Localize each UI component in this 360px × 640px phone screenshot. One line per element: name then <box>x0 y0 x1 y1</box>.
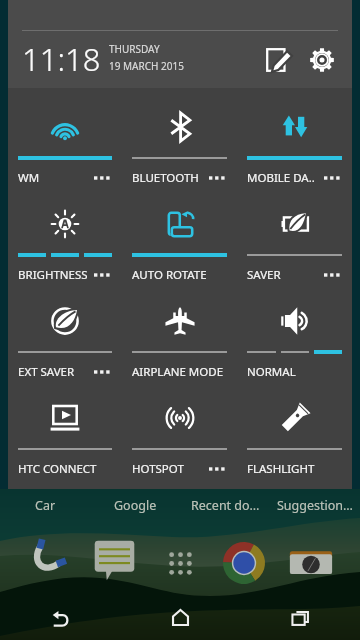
button[interactable]: Chrome <box>221 540 267 586</box>
button[interactable]: Camera <box>288 541 334 587</box>
staticText: THURSDAY <box>109 42 160 56</box>
button[interactable]: Phone <box>23 538 67 582</box>
button[interactable]: Recents <box>240 595 360 639</box>
button[interactable]: NORMAL <box>237 282 352 379</box>
staticText: Suggestion… <box>277 497 353 514</box>
button[interactable]: FLASHLIGHT <box>237 379 352 476</box>
button[interactable]: AIRPLANE MODE <box>122 282 237 379</box>
staticText: MOBILE DA.. <box>247 170 315 186</box>
staticText: AIRPLANE MODE <box>132 364 224 380</box>
button[interactable]: BLUETOOTH <box>122 88 237 185</box>
staticText: HTC CONNECT <box>18 461 97 477</box>
button[interactable]: AUTO ROTATE <box>122 185 237 282</box>
button[interactable]: Settings <box>300 38 344 82</box>
staticText: 11:18 <box>22 38 101 80</box>
staticText: NORMAL <box>247 364 296 380</box>
button[interactable]: Car <box>0 492 90 518</box>
button[interactable]: Recent do… <box>180 492 270 518</box>
button[interactable]: EXT SAVER <box>8 282 122 379</box>
staticText: AUTO ROTATE <box>132 267 207 283</box>
staticText: Google <box>114 497 157 514</box>
staticText: HOTSPOT <box>132 461 184 477</box>
button[interactable]: All apps <box>160 543 200 583</box>
staticText: WM <box>18 170 40 186</box>
staticText: 19 MARCH 2015 <box>109 59 184 73</box>
button[interactable]: HOTSPOT <box>122 379 237 476</box>
staticText: BLUETOOTH <box>132 170 199 186</box>
staticText: EXT SAVER <box>18 364 75 380</box>
staticText: FLASHLIGHT <box>247 461 315 477</box>
button[interactable]: WM <box>8 88 122 185</box>
button[interactable]: Home <box>120 595 240 639</box>
button[interactable]: Edit <box>256 38 300 82</box>
button[interactable]: Back <box>0 595 120 639</box>
button[interactable]: MOBILE DA.. <box>237 88 352 185</box>
button[interactable]: HTC CONNECT <box>8 379 122 476</box>
button[interactable]: Google <box>90 492 180 518</box>
button[interactable]: SAVER <box>237 185 352 282</box>
staticText: BRIGHTNESS <box>18 267 88 283</box>
button[interactable]: Suggestion… <box>270 492 360 518</box>
staticText: SAVER <box>247 267 281 283</box>
button[interactable]: Messages <box>91 537 137 583</box>
staticText: Car <box>35 497 56 514</box>
staticText: Recent do… <box>191 497 260 514</box>
button[interactable]: BRIGHTNESS <box>8 185 122 282</box>
